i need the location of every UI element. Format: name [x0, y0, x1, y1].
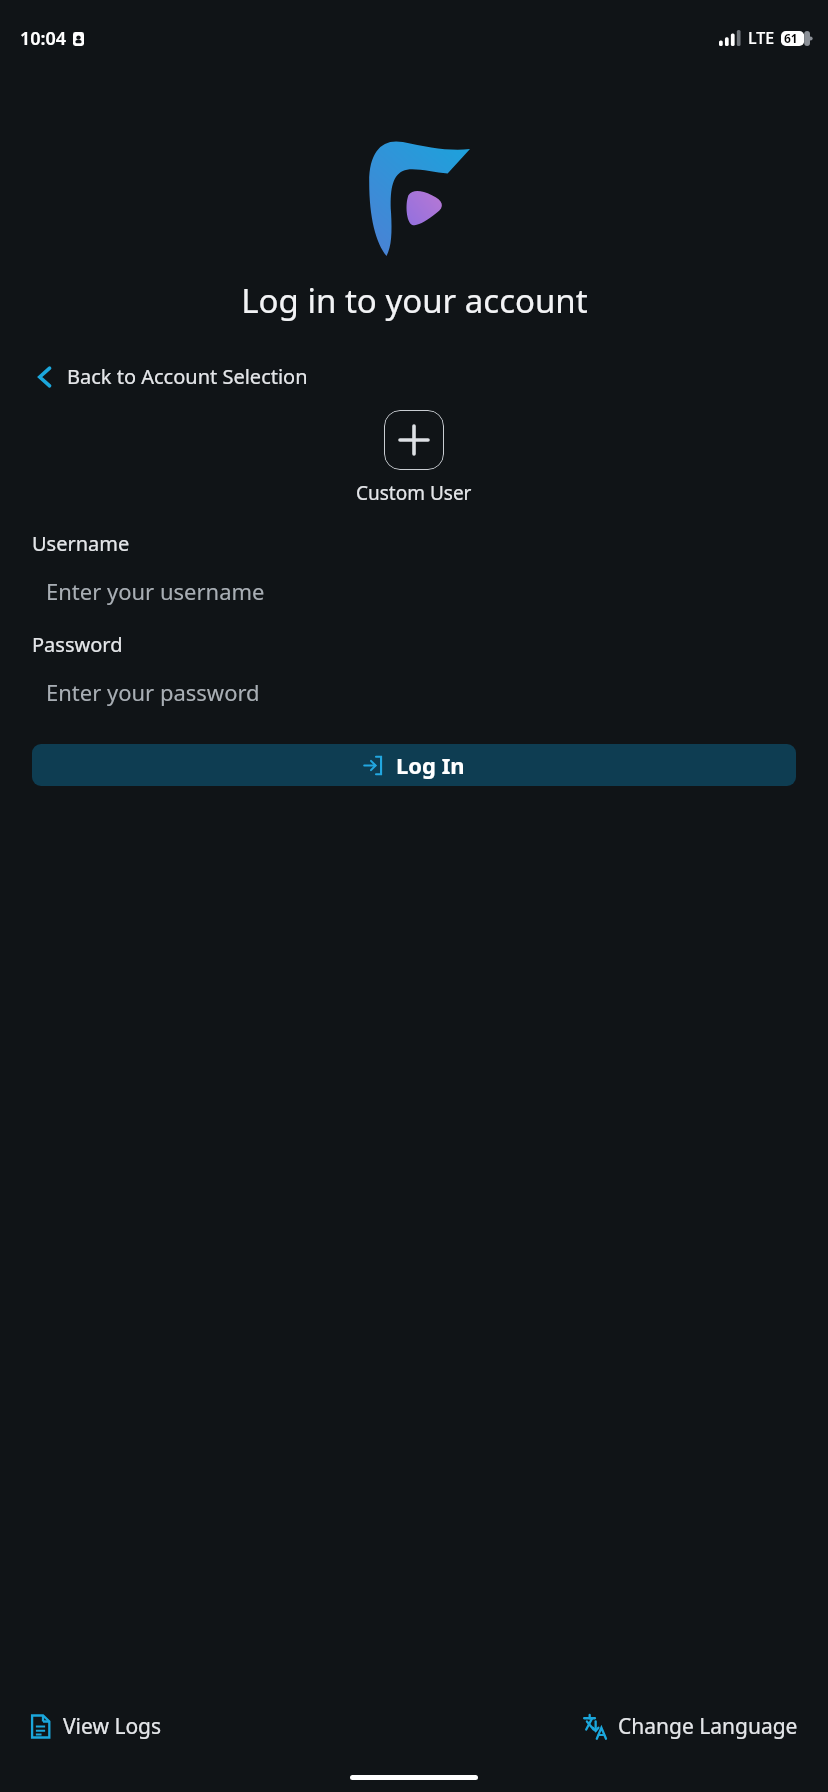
- button[interactable]: Log In: [32, 744, 796, 786]
- button[interactable]: Back to Account Selection: [28, 357, 316, 396]
- staticText: Enter your password: [46, 677, 260, 707]
- staticText: Enter your username: [46, 576, 265, 606]
- button[interactable]: Change Language: [575, 1704, 806, 1749]
- staticText: Back to Account Selection: [67, 363, 308, 390]
- button[interactable]: Enter your username: [32, 563, 796, 619]
- staticText: Custom User: [356, 480, 472, 506]
- button[interactable]: View Logs: [22, 1704, 170, 1749]
- staticText: 10:04: [20, 26, 67, 51]
- staticText: Password: [32, 631, 123, 658]
- staticText: Log In: [396, 750, 465, 780]
- staticText: Log in to your account: [241, 278, 588, 323]
- staticText: LTE: [748, 27, 775, 49]
- staticText: 61: [784, 30, 798, 46]
- button[interactable]: Enter your password: [32, 664, 796, 720]
- button[interactable]: Add custom user: [384, 410, 444, 470]
- staticText: Change Language: [618, 1712, 798, 1741]
- staticText: Username: [32, 530, 130, 557]
- staticText: View Logs: [63, 1712, 162, 1741]
